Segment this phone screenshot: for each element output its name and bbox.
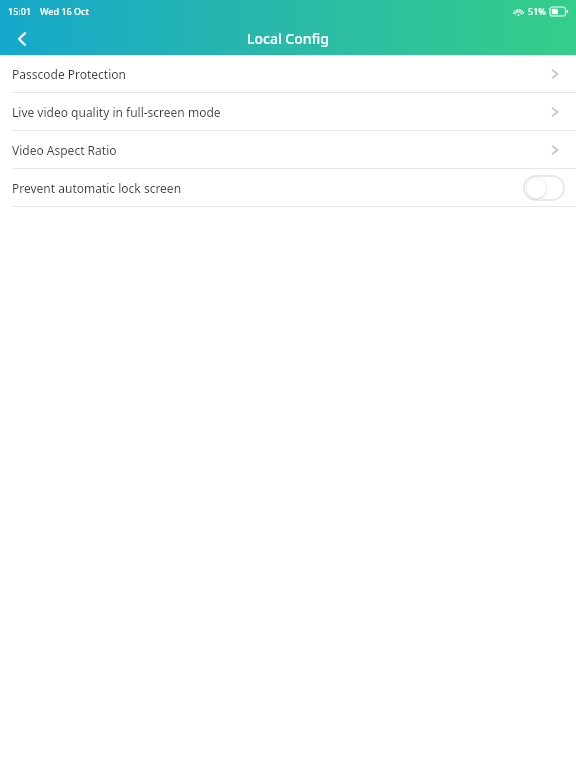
staticText: Local Config bbox=[247, 29, 329, 48]
button[interactable]: Live video quality in full-screen mode bbox=[0, 93, 576, 130]
staticText: Video Aspect Ratio bbox=[12, 142, 117, 158]
button[interactable]: Video Aspect Ratio bbox=[0, 131, 576, 168]
button[interactable]: Prevent automatic lock screen toggle bbox=[524, 176, 564, 200]
button[interactable]: Passcode Protection bbox=[0, 55, 576, 92]
staticText: Wed 16 Oct bbox=[40, 5, 89, 17]
staticText: Live video quality in full-screen mode bbox=[12, 104, 221, 120]
staticText: Prevent automatic lock screen bbox=[12, 180, 182, 196]
staticText: Passcode Protection bbox=[12, 66, 126, 82]
staticText: 15:01 bbox=[8, 5, 32, 17]
button[interactable]: Back bbox=[0, 22, 44, 55]
staticText: 51% bbox=[528, 5, 546, 17]
